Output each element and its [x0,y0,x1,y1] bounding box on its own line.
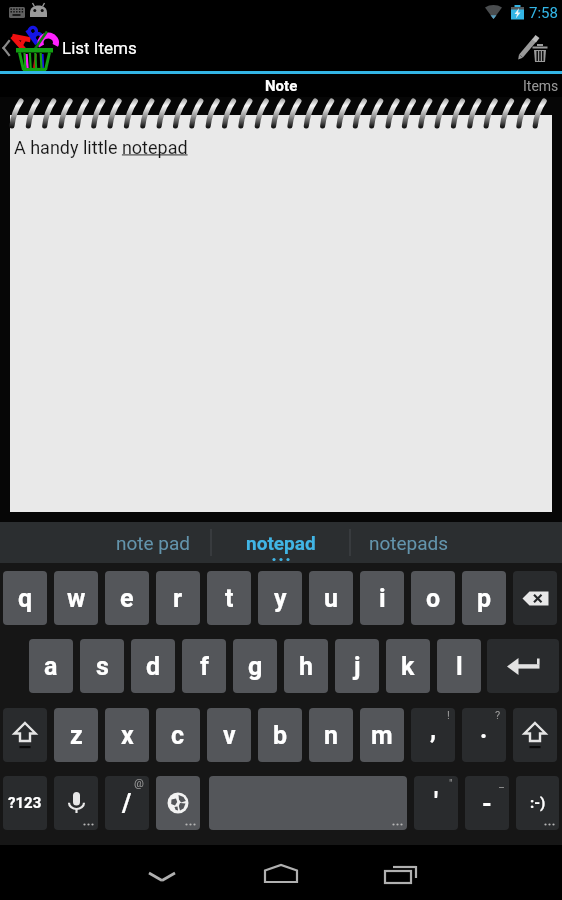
staticText: b [273,721,288,750]
staticText: ' [434,787,439,816]
staticText: note pad [116,532,191,554]
staticText: " [449,777,453,790]
button[interactable]: d [131,639,175,693]
staticText: s [96,652,109,681]
button[interactable]: n [309,708,353,762]
staticText: 7:58 [529,4,558,22]
staticText: q [18,584,33,613]
button[interactable]: a [29,639,73,693]
staticText: - [482,789,492,818]
staticText: . [480,715,488,744]
staticText: , [430,715,437,744]
staticText: / [122,789,132,818]
staticText: z [70,721,83,750]
button[interactable]: r [156,571,200,625]
staticText: a [44,652,58,681]
button[interactable] [130,845,190,900]
staticText: ! [447,709,450,722]
staticText: A handy little notepad [14,137,188,158]
button[interactable]: List Items [0,25,137,71]
button[interactable]: s [80,639,124,693]
button[interactable] [370,845,430,900]
button[interactable]: l [437,639,481,693]
button[interactable]: f [182,639,226,693]
staticText: Items [523,78,559,94]
button[interactable] [505,25,562,71]
button[interactable]: z [54,708,98,762]
button[interactable]: g [233,639,277,693]
staticText: j [354,652,361,681]
button[interactable]: , [411,708,455,762]
button[interactable]: Items [523,74,562,97]
staticText: @ [134,777,144,790]
staticText: List Items [62,38,137,58]
button[interactable] [487,639,559,693]
button[interactable]: note pad [0,522,211,563]
button[interactable]: . [462,708,506,762]
button[interactable] [54,776,98,830]
button[interactable] [3,708,47,762]
staticText: ?123 [8,794,42,812]
button[interactable]: x [105,708,149,762]
button[interactable]: / [105,776,149,830]
button[interactable]: Note [265,74,298,97]
staticText: k [401,652,415,681]
staticText: n [324,721,339,750]
staticText: i [379,584,386,613]
button[interactable]: j [335,639,379,693]
staticText: p [477,584,492,613]
button[interactable]: notepad [0,522,562,563]
staticText: e [120,584,134,613]
button[interactable]: q [3,571,47,625]
button[interactable]: y [258,571,302,625]
staticText: t [225,584,234,613]
staticText: h [299,652,314,681]
staticText: ? [495,709,501,722]
staticText: _ [499,777,504,790]
button[interactable] [513,708,557,762]
button[interactable]: c [156,708,200,762]
button[interactable]: p [462,571,506,625]
button[interactable]: o [411,571,455,625]
button[interactable]: notepads [350,522,562,563]
staticText: u [324,584,339,613]
staticText: v [223,721,236,750]
staticText: Note [265,77,298,95]
staticText: notepad [246,532,316,554]
staticText: r [173,584,183,613]
button[interactable]: t [207,571,251,625]
staticText: c [171,721,185,750]
button[interactable]: v [207,708,251,762]
staticText: w [67,584,86,613]
button[interactable]: k [386,639,430,693]
button[interactable]: - [465,776,509,830]
staticText: :-) [530,794,546,812]
button[interactable] [156,776,200,830]
staticText: notepads [369,532,449,554]
staticText: f [200,652,209,681]
button[interactable] [251,845,311,900]
staticText: g [248,652,263,681]
button[interactable]: e [105,571,149,625]
button[interactable]: w [54,571,98,625]
button[interactable]: i [360,571,404,625]
button[interactable] [513,571,557,625]
button[interactable]: h [284,639,328,693]
staticText: o [426,584,441,613]
button[interactable]: b [258,708,302,762]
staticText: x [121,721,134,750]
staticText: d [146,652,161,681]
button[interactable]: m [360,708,404,762]
button[interactable]: ' [414,776,458,830]
staticText: l [456,652,463,681]
button[interactable]: :-) [516,776,559,830]
staticText: y [274,584,287,613]
button[interactable]: ?123 [3,776,47,830]
staticText: m [371,721,393,750]
button[interactable]: A handy little notepad [10,115,552,512]
button[interactable]: u [309,571,353,625]
